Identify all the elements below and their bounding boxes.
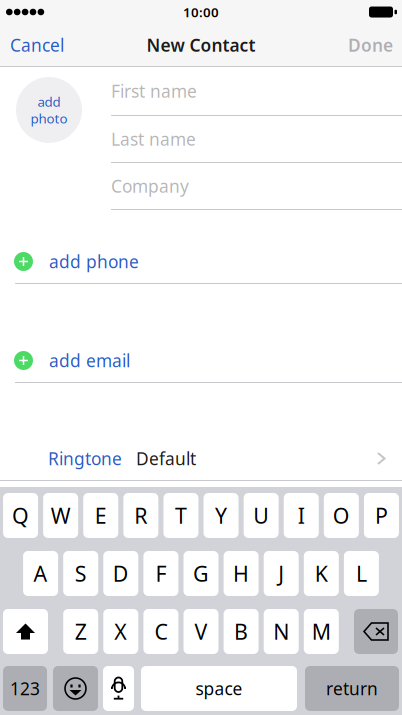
staticText: 123 [10, 677, 40, 700]
staticText: M [312, 617, 331, 646]
staticText: return [326, 677, 378, 700]
button[interactable]: A [23, 551, 58, 596]
staticText: G [193, 559, 209, 588]
staticText: Done [348, 33, 393, 56]
button[interactable]: Y [204, 493, 239, 538]
button[interactable]: Done [336, 24, 402, 66]
staticText: B [234, 617, 248, 646]
staticText: N [273, 617, 289, 646]
staticText: X [114, 617, 127, 646]
button[interactable]: W [43, 493, 78, 538]
staticText: S [75, 559, 87, 588]
staticText: add email [49, 349, 130, 372]
staticText: Z [75, 617, 87, 646]
staticText: R [134, 501, 147, 530]
button[interactable]: S [63, 551, 98, 596]
button[interactable]: add phone [0, 240, 402, 284]
staticText: Y [215, 501, 227, 530]
button[interactable]: X [103, 609, 138, 654]
button[interactable]: K [304, 551, 339, 596]
staticText: U [253, 501, 269, 530]
button[interactable]: O [324, 493, 359, 538]
staticText: First name [111, 79, 197, 102]
button[interactable]: E [83, 493, 118, 538]
staticText: New Contact [146, 33, 255, 56]
staticText: add phone [49, 250, 139, 273]
staticText: Ringtone [48, 447, 122, 470]
button[interactable]: F [143, 551, 178, 596]
staticText: V [194, 617, 207, 646]
staticText: W [51, 501, 71, 530]
button[interactable]: Shift [3, 609, 48, 654]
button[interactable]: I [284, 493, 319, 538]
staticText: Default [136, 447, 196, 470]
button[interactable]: T [163, 493, 198, 538]
button[interactable]: V [183, 609, 218, 654]
button[interactable]: Emoji [53, 666, 98, 711]
button[interactable]: P [364, 493, 399, 538]
staticText: F [155, 559, 166, 588]
staticText: P [375, 501, 388, 530]
button[interactable]: add email [0, 339, 402, 383]
button[interactable]: H [224, 551, 259, 596]
staticText: I [298, 501, 305, 530]
button[interactable]: Dictate [103, 666, 134, 711]
button[interactable]: Cancel [0, 24, 76, 66]
button[interactable]: Delete [354, 609, 398, 654]
staticText: K [315, 559, 328, 588]
staticText: E [95, 501, 107, 530]
button[interactable]: G [183, 551, 218, 596]
staticText: H [233, 559, 249, 588]
staticText: A [34, 559, 48, 588]
button[interactable]: U [244, 493, 279, 538]
button[interactable]: space [141, 666, 297, 711]
staticText: Cancel [10, 33, 64, 56]
staticText: Last name [111, 127, 196, 150]
button[interactable]: L [344, 551, 379, 596]
button[interactable]: return [305, 666, 399, 711]
button[interactable]: R [123, 493, 158, 538]
staticText: photo [30, 109, 67, 127]
button[interactable]: M [304, 609, 339, 654]
staticText: J [278, 559, 284, 588]
staticText: L [356, 559, 367, 588]
button[interactable]: 123 [3, 666, 47, 711]
button[interactable]: D [103, 551, 138, 596]
staticText: C [154, 617, 167, 646]
button[interactable]: J [264, 551, 299, 596]
button[interactable]: N [264, 609, 299, 654]
staticText: T [175, 501, 187, 530]
button[interactable]: Z [63, 609, 98, 654]
staticText: O [333, 501, 350, 530]
staticText: space [195, 677, 242, 700]
button[interactable]: Ringtone [0, 437, 402, 481]
button[interactable]: B [224, 609, 259, 654]
staticText: Q [12, 501, 29, 530]
staticText: Company [111, 174, 189, 197]
button[interactable]: Q [3, 493, 38, 538]
staticText: 10:00 [183, 3, 219, 21]
staticText: add [37, 93, 60, 110]
button[interactable]: C [143, 609, 178, 654]
staticText: D [113, 559, 129, 588]
